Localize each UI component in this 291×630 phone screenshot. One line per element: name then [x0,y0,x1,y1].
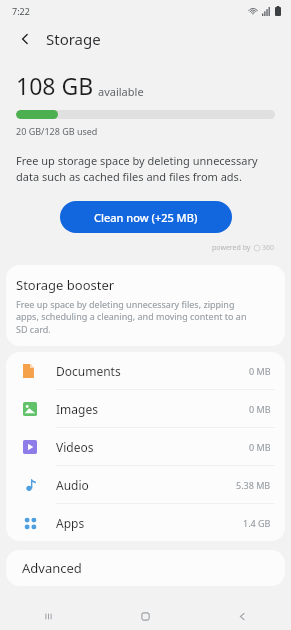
button[interactable]: Advanced [6,550,285,586]
button[interactable]: Documents [6,352,285,389]
button[interactable]: Home [97,602,194,630]
button[interactable]: Recents [0,602,97,630]
staticText: 20 GB/128 GB used [16,125,98,137]
staticText: 360 [262,243,275,253]
button[interactable]: Audio [6,465,285,503]
staticText: Storage booster [16,276,115,294]
staticText: Advanced [22,559,82,577]
staticText: 1.4 GB [243,517,271,529]
staticText: Apps [56,515,85,531]
staticText: 0 MB [249,365,271,377]
staticText: available [98,84,144,99]
staticText: Documents [56,363,121,379]
button[interactable]: Images [6,389,285,427]
staticText: Free up space by deleting unnecessary fi… [16,298,247,336]
staticText: 7:22 [12,5,30,17]
staticText: powered by [212,243,251,253]
staticText: Free up storage space by deleting unnece… [16,153,258,185]
staticText: Storage [46,29,101,49]
button[interactable]: Clean now (+25 MB) [60,201,232,233]
staticText: Videos [56,439,94,455]
staticText: 0 MB [249,403,271,415]
button[interactable]: Back [194,602,291,630]
staticText: Clean now (+25 MB) [94,210,198,225]
button[interactable]: Videos [6,427,285,465]
staticText: 5.38 MB [236,479,271,491]
staticText: 0 MB [249,441,271,453]
staticText: Images [56,401,98,417]
button[interactable]: Back [14,28,36,50]
button[interactable]: Apps [6,503,285,541]
staticText: Audio [56,477,89,493]
staticText: 108 GB [16,70,94,101]
